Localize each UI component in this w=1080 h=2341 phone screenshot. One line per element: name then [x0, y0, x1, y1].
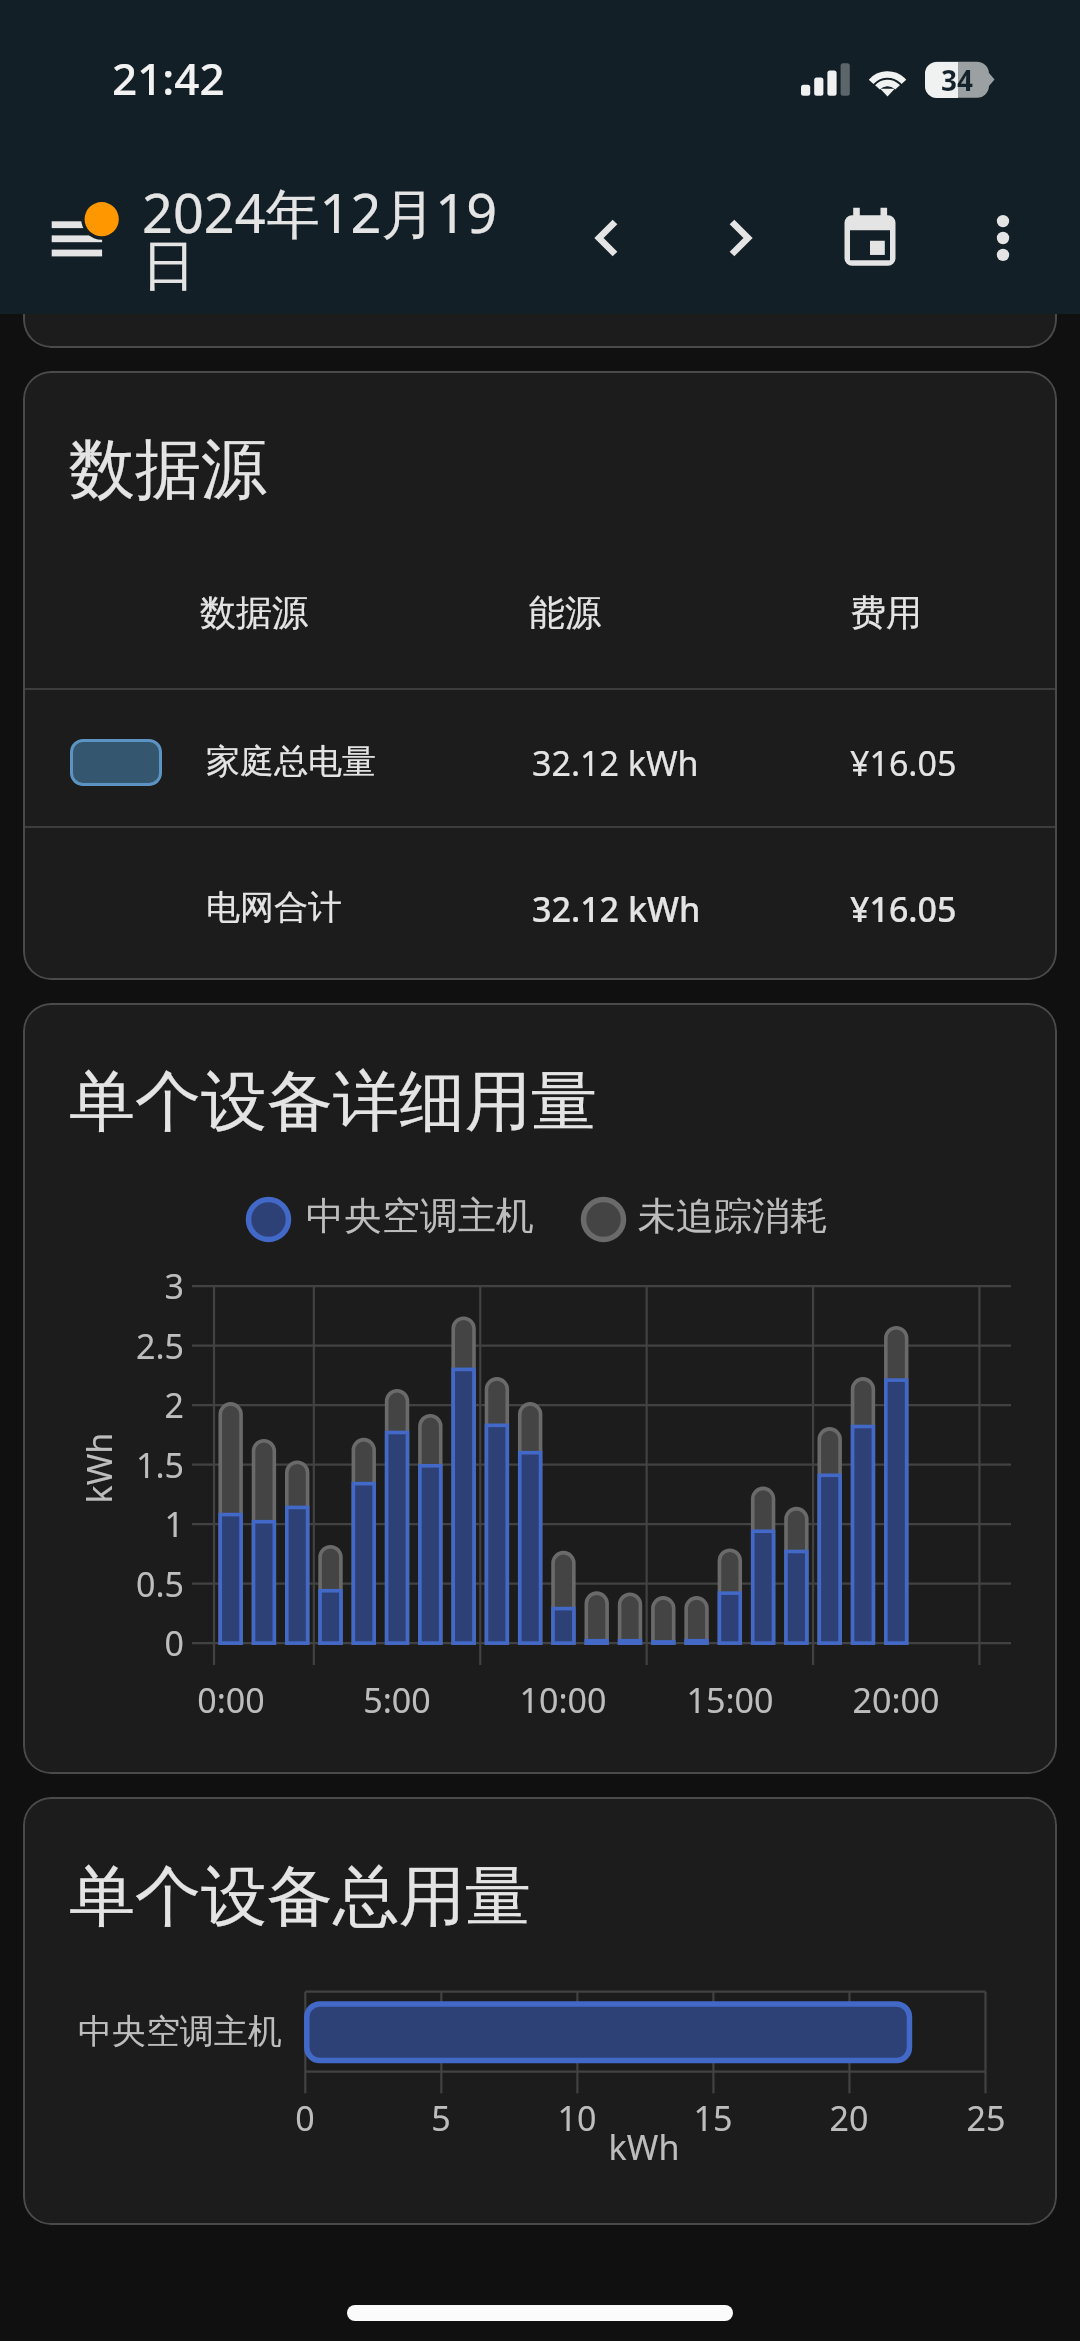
staticText: kWh	[554, 2124, 734, 2170]
staticText: ¥16.05	[850, 740, 957, 786]
staticText: 20:00	[806, 1677, 986, 1723]
button[interactable]: Previous day	[561, 192, 653, 284]
staticText: ¥16.05	[850, 886, 957, 932]
staticText: 费用	[850, 590, 922, 635]
staticText: 单个设备总用量	[69, 1855, 531, 1938]
staticText: 中央空调主机	[306, 1192, 534, 1240]
staticText: 0	[235, 2095, 375, 2141]
button[interactable]: Next day	[694, 192, 786, 284]
staticText: 单个设备详细用量	[69, 1060, 597, 1143]
button[interactable]: 家庭总电量	[23, 690, 1057, 826]
staticText: 5:00	[307, 1677, 487, 1723]
staticText: 10	[507, 2095, 647, 2141]
staticText: 未追踪消耗	[638, 1192, 828, 1240]
staticText: kWh	[75, 1432, 121, 1503]
staticText: 2.5	[64, 1323, 184, 1369]
staticText: 1.5	[64, 1442, 184, 1488]
staticText: 25	[916, 2095, 1056, 2141]
staticText: 电网合计	[206, 886, 342, 929]
staticText: 32.12 kWh	[532, 740, 699, 786]
staticText: 2	[64, 1382, 184, 1428]
staticText: 10:00	[473, 1677, 653, 1723]
button[interactable]: Pick a date	[824, 192, 916, 284]
staticText: 15	[643, 2095, 783, 2141]
staticText: 21:42	[112, 48, 225, 108]
staticText: 15:00	[640, 1677, 820, 1723]
staticText: 0	[64, 1620, 184, 1666]
staticText: 2024年12月19日	[142, 175, 514, 300]
staticText: 能源	[529, 590, 601, 635]
staticText: 3	[64, 1263, 184, 1309]
staticText: 家庭总电量	[206, 740, 376, 783]
staticText: 数据源	[69, 428, 267, 511]
staticText: 34	[941, 61, 974, 98]
staticText: 32.12 kWh	[532, 886, 701, 932]
staticText: 5	[371, 2095, 511, 2141]
staticText: 0.5	[64, 1561, 184, 1607]
staticText: 20	[779, 2095, 919, 2141]
staticText: 中央空调主机	[62, 2010, 282, 2053]
button[interactable]: Open navigation menu	[30, 186, 130, 278]
button[interactable]: More options	[957, 192, 1049, 284]
staticText: 0:00	[141, 1677, 321, 1723]
staticText: 数据源	[200, 590, 308, 635]
staticText: 1	[64, 1501, 184, 1547]
